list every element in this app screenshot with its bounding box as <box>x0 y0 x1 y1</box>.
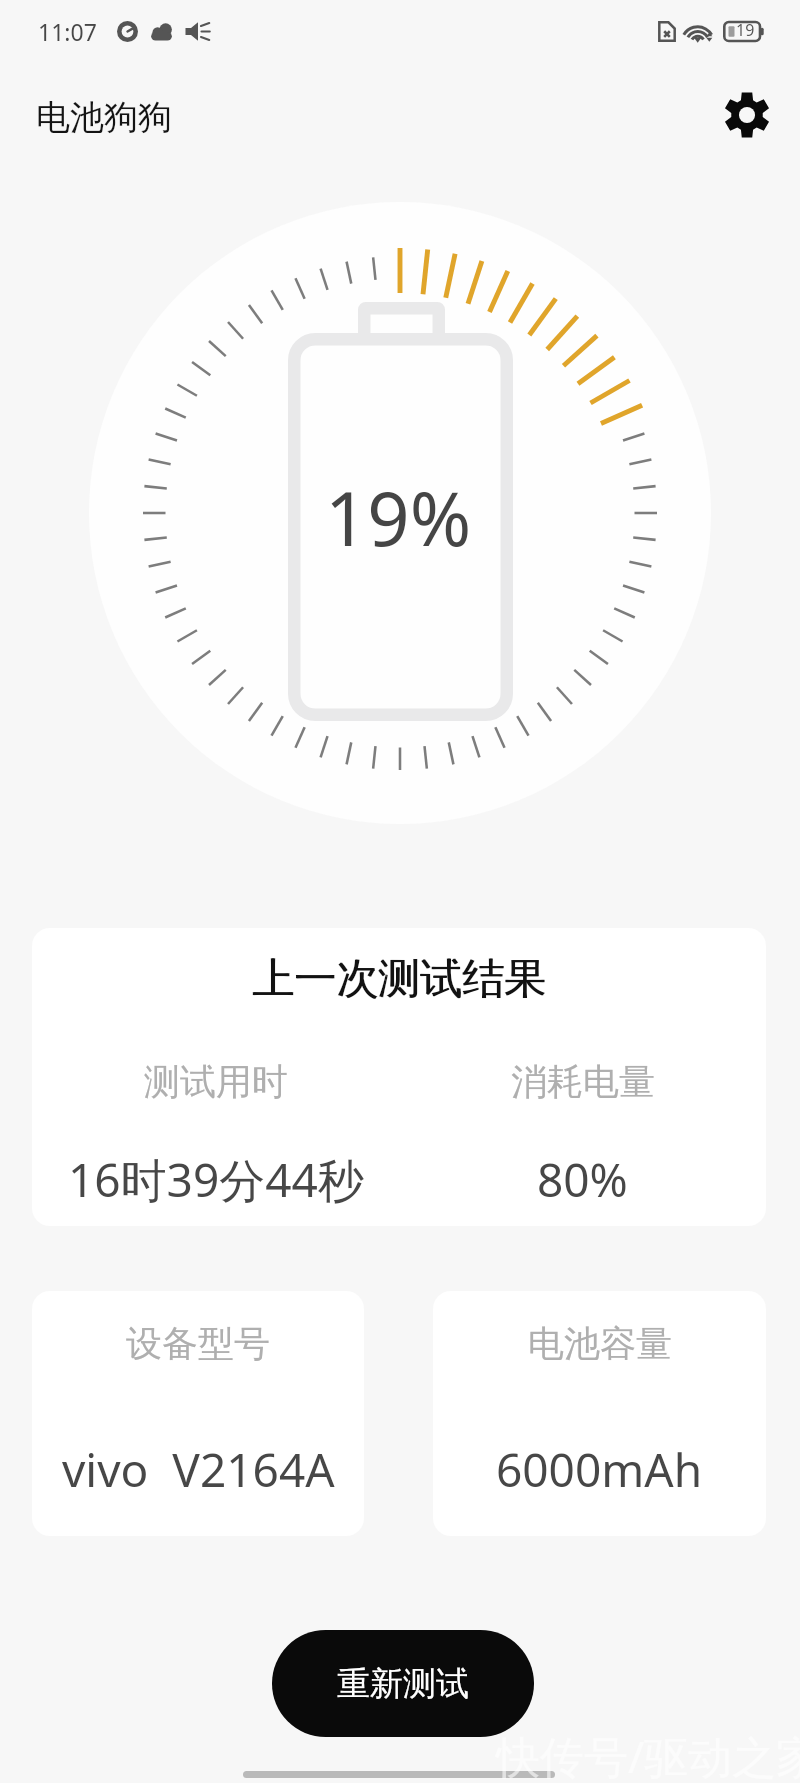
button[interactable]: 重新测试 <box>272 1630 534 1737</box>
button[interactable]: Settings <box>711 79 783 151</box>
staticText: 上一次测试结果 <box>33 953 766 1006</box>
staticText: 16时39分44秒 <box>68 1148 364 1211</box>
staticText: 电池狗狗 <box>36 96 172 139</box>
staticText: 6000mAh <box>496 1438 703 1501</box>
button[interactable]: 上一次测试结果 <box>32 928 766 1226</box>
staticText: 19% <box>325 467 472 568</box>
staticText: 19 <box>736 19 755 41</box>
staticText: 上一次测试结果 <box>32 953 766 1006</box>
staticText: 11:07 <box>38 16 97 47</box>
staticText: 测试用时 <box>144 1059 288 1104</box>
button[interactable]: 电池容量 <box>433 1291 766 1536</box>
staticText: 快传号/驱动之家 <box>496 1726 800 1783</box>
staticText: 电池容量 <box>528 1321 672 1366</box>
staticText: 消耗电量 <box>511 1059 655 1104</box>
staticText: 重新测试 <box>337 1663 469 1705</box>
button[interactable]: 设备型号 <box>32 1291 364 1536</box>
staticText: vivo V2164A <box>62 1438 335 1501</box>
staticText: 80% <box>537 1148 628 1211</box>
staticText: 设备型号 <box>126 1321 270 1366</box>
